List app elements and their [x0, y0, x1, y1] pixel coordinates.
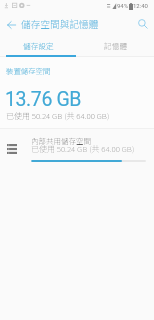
staticText: 儲存空間與記憶體	[21, 17, 99, 31]
staticText: 94%	[117, 2, 129, 9]
staticText: 13.76 GB	[5, 88, 82, 111]
button[interactable]: 記憶體	[77, 36, 154, 57]
button[interactable]: 內部共用儲存空間	[0, 129, 154, 174]
staticText: 裝置儲存空間	[6, 65, 51, 76]
button[interactable]: 儲存設定	[0, 36, 77, 57]
staticText: 內部共用儲存空間	[31, 135, 91, 146]
staticText: 已使用 50.24 GB (共 64.00 GB)	[6, 110, 110, 122]
staticText: 12:40	[133, 2, 148, 9]
button[interactable]: Search	[133, 14, 153, 34]
staticText: 記憶體	[104, 40, 128, 51]
staticText: 儲存設定	[23, 40, 54, 51]
staticText: 已使用 50.24 GB (共 64.00 GB)	[31, 143, 135, 155]
button[interactable]: Back	[2, 15, 21, 34]
